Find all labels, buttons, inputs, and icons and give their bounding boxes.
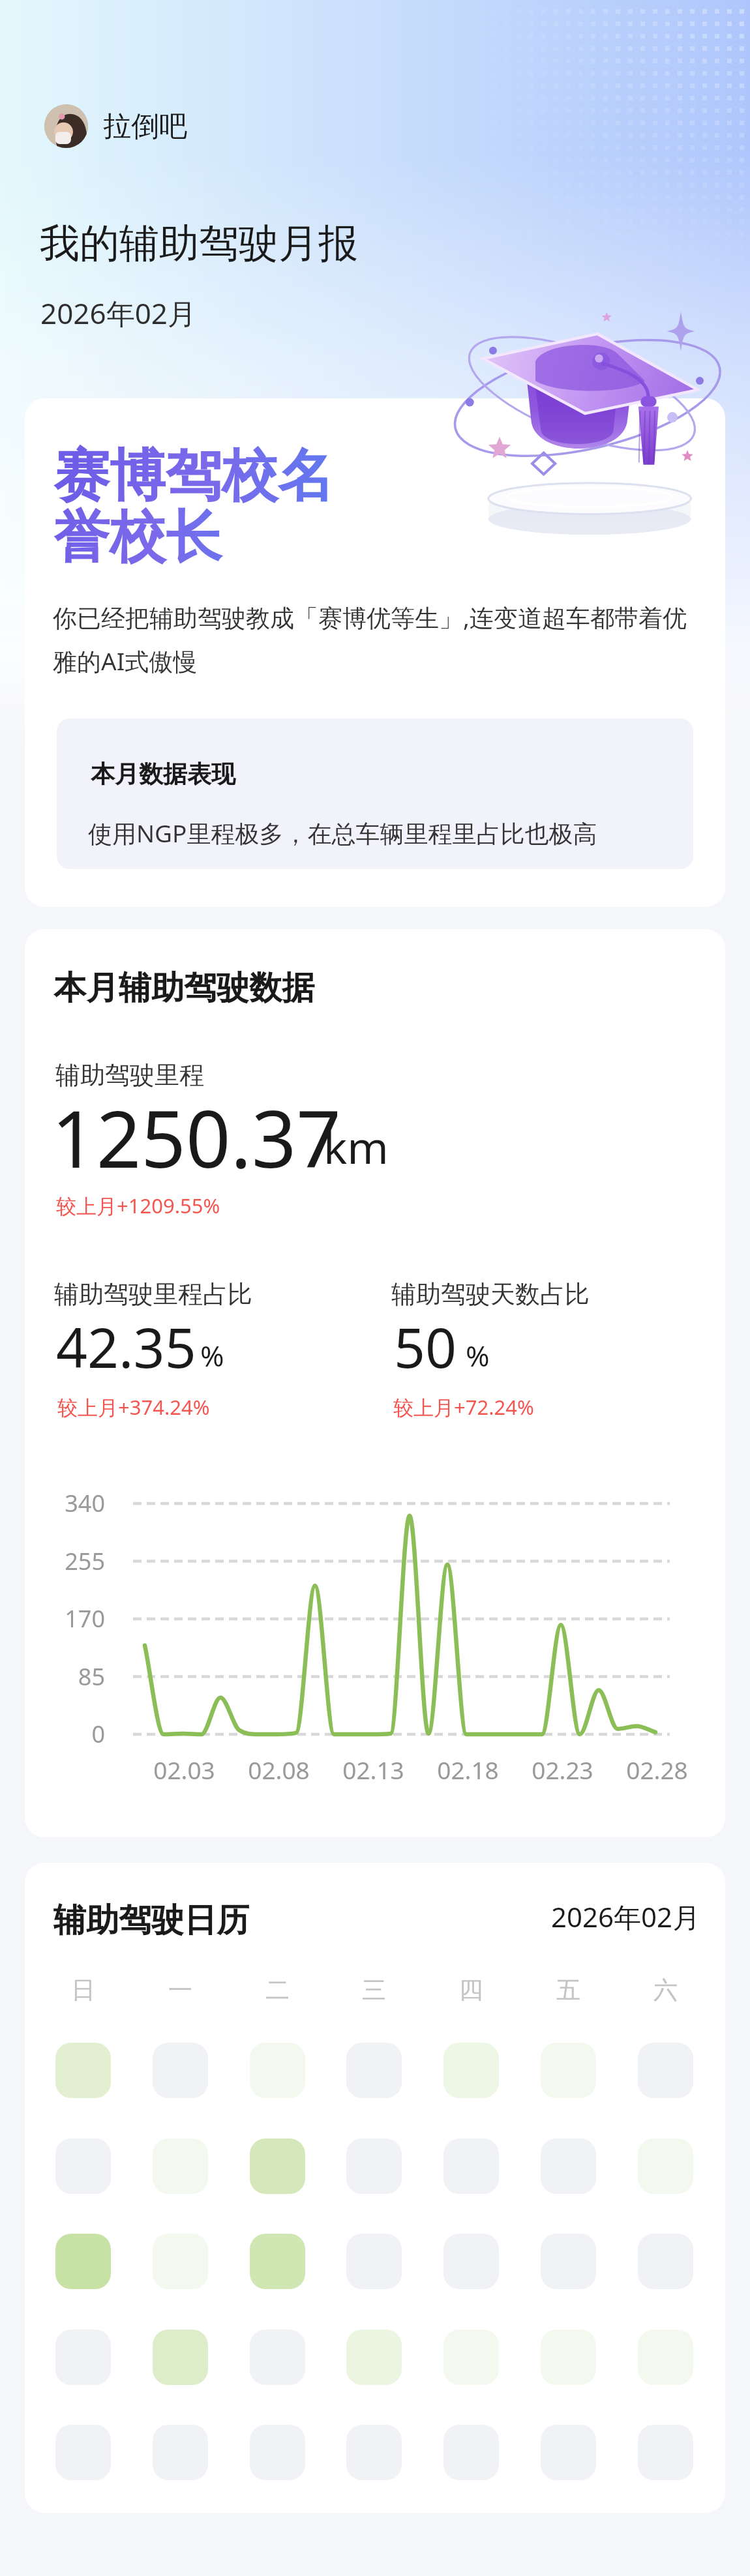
button[interactable] [153, 2330, 208, 2385]
button[interactable] [443, 2425, 499, 2480]
button[interactable] [55, 2330, 111, 2385]
staticText: 2026年02月 [40, 293, 197, 333]
button[interactable] [55, 2234, 111, 2289]
button[interactable] [153, 2234, 208, 2289]
button[interactable] [346, 2043, 402, 2098]
staticText: % [200, 1336, 224, 1375]
button[interactable] [55, 2043, 111, 2098]
staticText: 较上月+1209.55% [56, 1192, 220, 1219]
button[interactable] [541, 2043, 596, 2098]
button[interactable] [638, 2043, 693, 2098]
staticText: 2026年02月 [551, 1898, 700, 1935]
button[interactable] [250, 2139, 305, 2194]
staticText: 二 [265, 1975, 290, 2006]
staticText: 你已经把辅助驾驶教成「赛博优等生」,连变道超车都带着优雅的AI式傲慢 [53, 600, 698, 677]
staticText: 02.08 [248, 1753, 310, 1786]
staticText: 辅助驾驶日历 [53, 1900, 249, 1941]
button[interactable] [443, 2234, 499, 2289]
button[interactable] [153, 2425, 208, 2480]
button[interactable] [346, 2330, 402, 2385]
button[interactable] [55, 2139, 111, 2194]
staticText: 较上月+72.24% [393, 1393, 534, 1421]
staticText: km [323, 1116, 389, 1177]
button[interactable] [638, 2234, 693, 2289]
staticText: 日 [71, 1975, 95, 2006]
button[interactable] [541, 2234, 596, 2289]
button[interactable] [346, 2425, 402, 2480]
staticText: 0 [91, 1718, 105, 1750]
staticText: 四 [459, 1975, 483, 2006]
other: Profile [44, 104, 88, 148]
button[interactable] [346, 2234, 402, 2289]
staticText: 255 [65, 1545, 105, 1577]
staticText: 170 [65, 1603, 105, 1635]
staticText: 85 [78, 1661, 105, 1693]
button[interactable] [638, 2425, 693, 2480]
staticText: 辅助驾驶里程 [55, 1059, 204, 1091]
button[interactable] [250, 2043, 305, 2098]
staticText: 一 [168, 1975, 192, 2006]
button[interactable] [250, 2234, 305, 2289]
staticText: % [466, 1336, 490, 1375]
staticText: 42.35 [56, 1309, 196, 1384]
button[interactable] [153, 2139, 208, 2194]
staticText: 六 [653, 1975, 678, 2006]
staticText: 使用NGP里程极多，在总车辆里程里占比也极高 [88, 816, 597, 850]
staticText: 02.13 [342, 1753, 404, 1786]
button[interactable]: Profile [44, 104, 187, 148]
button[interactable] [541, 2330, 596, 2385]
staticText: 誉校长 [53, 502, 222, 572]
button[interactable] [443, 2330, 499, 2385]
button[interactable] [638, 2330, 693, 2385]
staticText: 340 [65, 1487, 105, 1519]
staticText: 拉倒吧 [103, 109, 187, 144]
staticText: 辅助驾驶里程占比 [54, 1279, 252, 1310]
staticText: 本月辅助驾驶数据 [53, 968, 314, 1009]
button[interactable] [250, 2425, 305, 2480]
staticText: 我的辅助驾驶月报 [40, 218, 358, 269]
staticText: 02.28 [626, 1753, 688, 1786]
staticText: 1250.37 [52, 1084, 341, 1191]
staticText: 三 [362, 1975, 386, 2006]
staticText: 02.03 [153, 1753, 215, 1786]
button[interactable] [541, 2139, 596, 2194]
staticText: 五 [556, 1975, 580, 2006]
button[interactable] [541, 2425, 596, 2480]
staticText: 02.23 [532, 1753, 593, 1786]
button[interactable] [443, 2043, 499, 2098]
button[interactable] [346, 2139, 402, 2194]
staticText: 较上月+374.24% [57, 1393, 210, 1421]
button[interactable] [55, 2425, 111, 2480]
staticText: 50 [394, 1309, 457, 1384]
button[interactable] [443, 2139, 499, 2194]
staticText: 02.18 [437, 1753, 499, 1786]
button[interactable] [250, 2330, 305, 2385]
button[interactable] [153, 2043, 208, 2098]
staticText: 本月数据表现 [91, 759, 235, 790]
button[interactable] [638, 2139, 693, 2194]
staticText: 辅助驾驶天数占比 [391, 1279, 590, 1310]
staticText: 赛博驾校名 [53, 441, 334, 511]
